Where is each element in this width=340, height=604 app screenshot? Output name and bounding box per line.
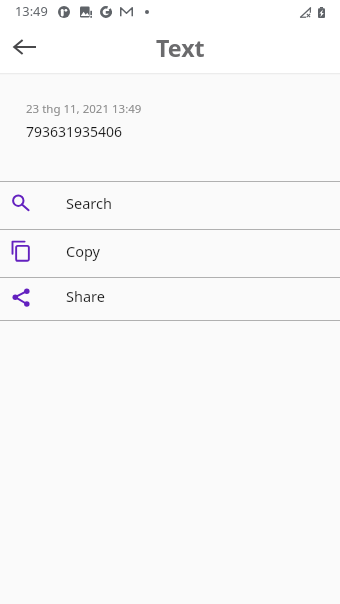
button[interactable]: Copy <box>0 230 340 277</box>
staticText: 793631935406 <box>26 122 123 141</box>
staticText: 13:49 <box>15 2 48 19</box>
staticText: Search <box>66 193 112 213</box>
button[interactable]: Back <box>1 23 49 71</box>
staticText: 23 thg 11, 2021 13:49 <box>26 101 142 117</box>
staticText: Text <box>156 32 205 64</box>
button[interactable]: Share <box>0 278 340 320</box>
staticText: Copy <box>66 241 100 261</box>
staticText: Share <box>66 286 105 306</box>
button[interactable]: Search <box>0 182 340 229</box>
